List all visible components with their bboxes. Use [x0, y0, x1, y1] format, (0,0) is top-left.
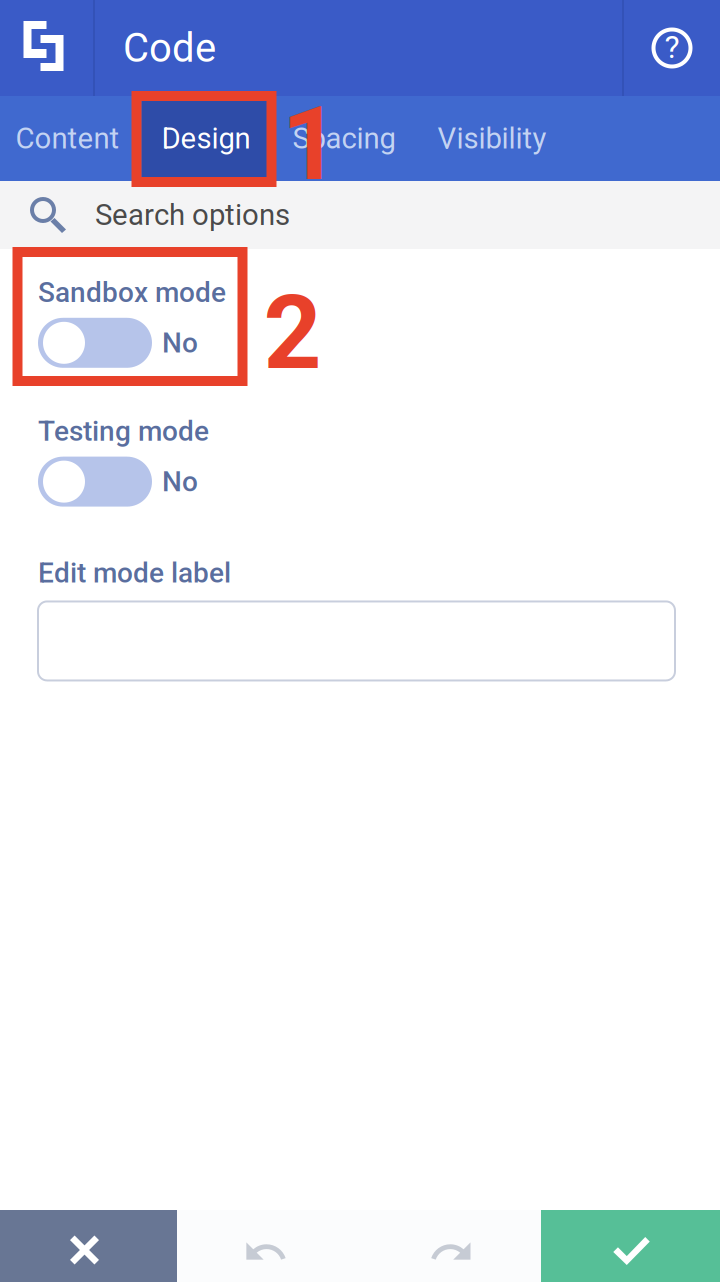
- staticText: Visibility: [437, 121, 546, 156]
- staticText: Design: [161, 121, 250, 156]
- staticText: No: [162, 326, 198, 359]
- staticText: 2: [263, 274, 321, 393]
- button[interactable]: Content: [0, 96, 141, 181]
- staticText: Spacing: [292, 121, 395, 156]
- staticText: No: [162, 465, 198, 498]
- button[interactable]: Search options: [0, 181, 720, 249]
- staticText: Testing mode: [38, 415, 209, 448]
- button[interactable]: Visibility: [417, 96, 568, 181]
- button[interactable]: Confirm: [541, 1210, 720, 1282]
- button[interactable]: Spacing: [272, 96, 417, 181]
- button[interactable]: Help: [624, 0, 720, 96]
- staticText: Sandbox mode: [38, 276, 226, 309]
- button[interactable]: Cancel: [0, 1210, 177, 1282]
- staticText: Content: [15, 121, 119, 156]
- button[interactable]: Undo: [177, 1210, 359, 1282]
- button[interactable]: No: [38, 318, 720, 368]
- button[interactable]: No: [38, 457, 720, 507]
- staticText: 1: [281, 85, 339, 204]
- staticText: Edit mode label: [38, 557, 231, 589]
- button[interactable]: Home: [0, 0, 93, 96]
- staticText: Search options: [95, 198, 290, 232]
- staticText: Code: [123, 25, 216, 71]
- button[interactable]: Design: [141, 96, 272, 181]
- button[interactable]: Redo: [359, 1210, 541, 1282]
- staticText: ?: [664, 28, 679, 66]
